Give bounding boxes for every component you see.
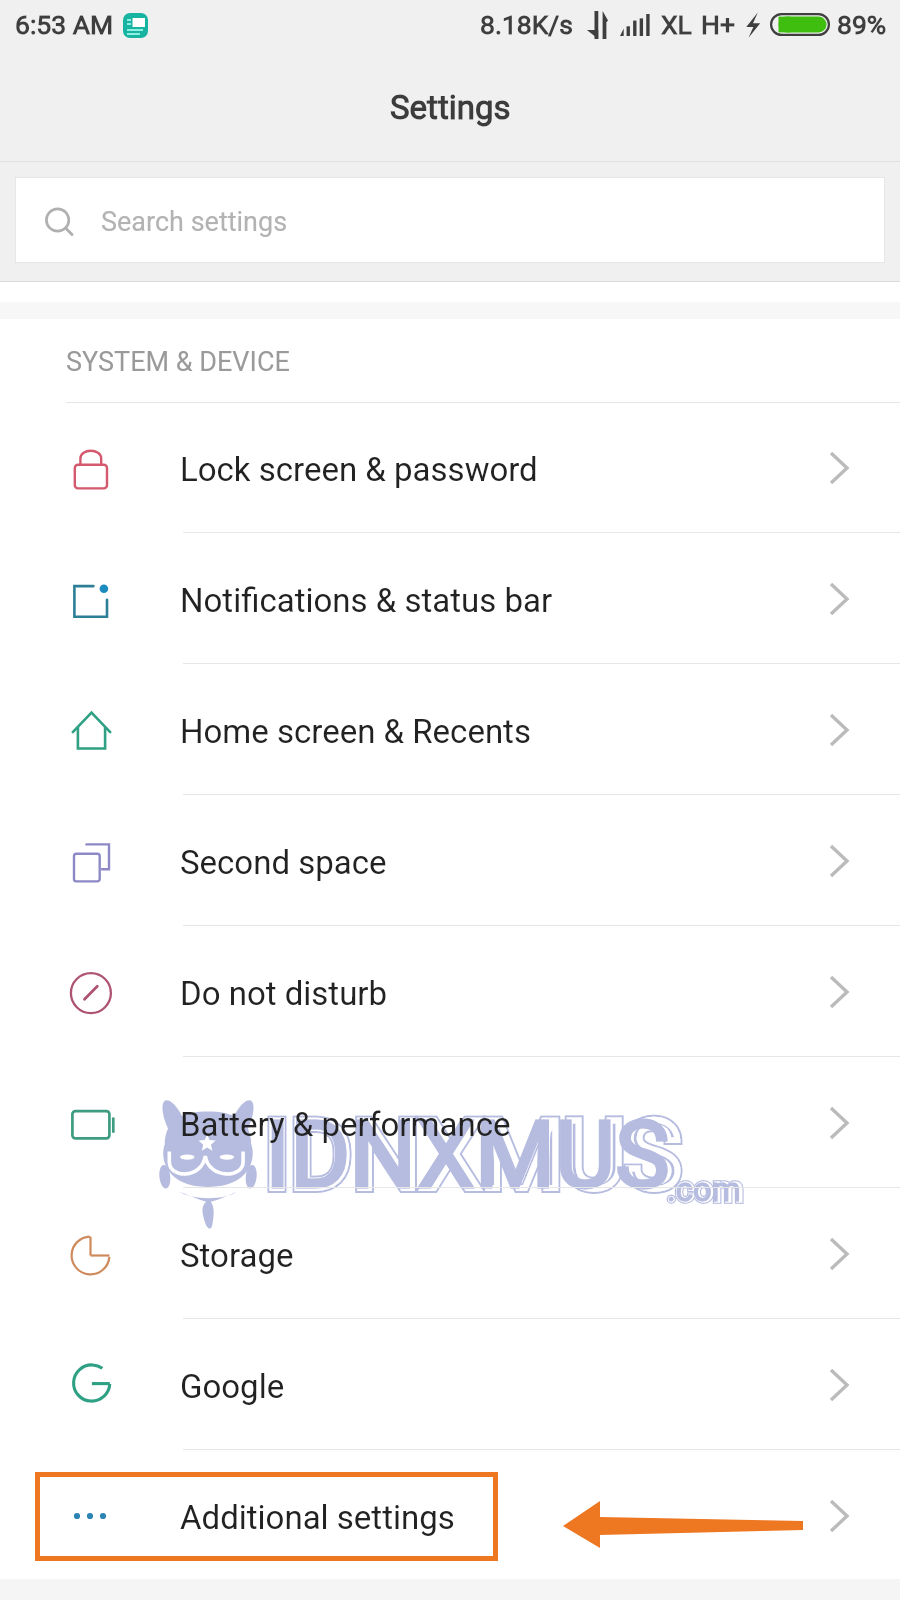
other: Open Battery & performance [827,1108,857,1138]
staticText: Settings [390,88,511,127]
button[interactable]: Do not disturb [0,926,900,1057]
staticText: Do not disturb [180,974,388,1013]
staticText: .com [667,1169,743,1209]
other: Open Additional settings [827,1501,857,1531]
staticText: SYSTEM & DEVICE [66,346,290,378]
staticText: Lock screen & password [180,450,538,489]
staticText: Second space [180,843,387,882]
other: Open Do not disturb [827,977,857,1007]
other: Search [45,208,77,240]
button[interactable]: Google [0,1319,900,1450]
staticText: XL [661,9,692,40]
staticText: 89% [837,9,887,40]
staticText: Google [180,1367,285,1406]
staticText: .com [667,1169,743,1209]
button[interactable]: Home screen & Recents [0,664,900,795]
button[interactable]: Storage [0,1188,900,1319]
staticText: Battery & performance [180,1105,511,1144]
button[interactable]: Second space [0,795,900,926]
staticText: Storage [180,1236,294,1275]
other: Open Notifications & status bar [827,584,857,614]
button[interactable]: Battery & performance [0,1057,900,1188]
button[interactable]: Lock screen & password [0,402,900,533]
staticText: Notifications & status bar [180,581,553,620]
other: Open Second space [827,846,857,876]
staticText: H+ [701,9,735,40]
staticText: IDNXMUS [264,1100,682,1211]
staticText: IDNXMUS [265,1102,670,1210]
staticText: Search settings [101,206,288,238]
staticText: 8.18K/s [480,9,573,40]
staticText: IDNXMUS [264,1100,682,1211]
other: Open Home screen & Recents [827,715,857,745]
staticText: IDNXMUS [264,1100,682,1211]
staticText: .com [667,1170,741,1209]
button[interactable]: Notifications & status bar [0,533,900,664]
other: Open Google [827,1370,857,1400]
staticText: Home screen & Recents [180,712,531,751]
staticText: .com [667,1169,743,1209]
staticText: 6:53 AM [15,9,114,40]
button[interactable]: Additional settings [0,1450,900,1581]
other: Open Lock screen & password [827,453,857,483]
other: Open Storage [827,1239,857,1269]
button[interactable]: Search [15,177,885,263]
staticText: Additional settings [180,1498,455,1537]
